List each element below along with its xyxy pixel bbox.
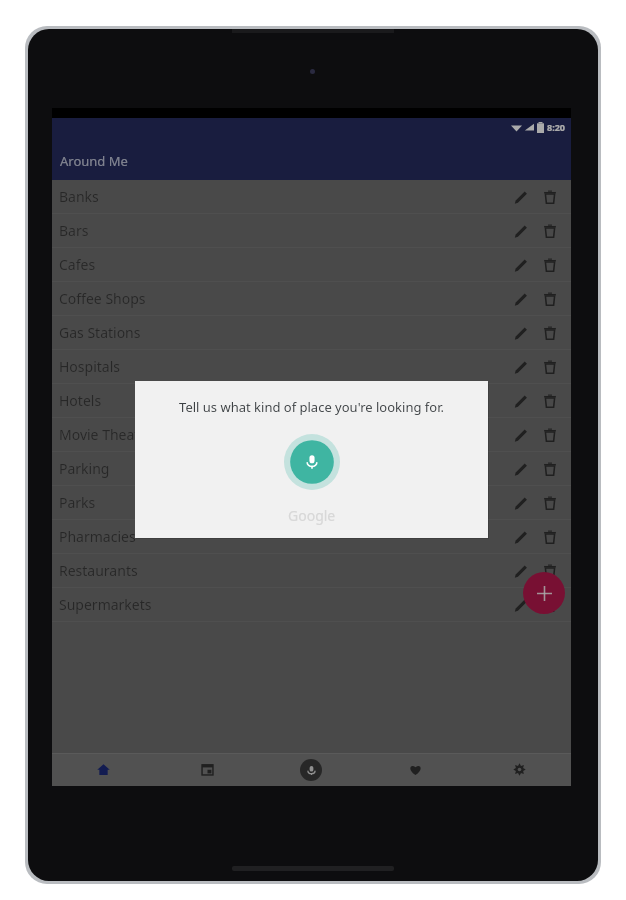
button[interactable]: Parks	[52, 486, 571, 519]
staticText: Gas Stations	[59, 323, 141, 342]
button[interactable]: Movie Theaters	[52, 418, 571, 451]
button[interactable]: Edit Hotels	[507, 388, 533, 414]
button[interactable]: Delete Banks	[537, 184, 563, 210]
staticText: Pharmacies	[59, 527, 136, 546]
button[interactable]: Delete Restaurants	[537, 558, 563, 584]
button[interactable]: Edit Parks	[507, 490, 533, 516]
button[interactable]: Events	[155, 753, 259, 786]
staticText: Hotels	[59, 391, 102, 410]
button[interactable]: Settings	[467, 753, 571, 786]
staticText: Cafes	[59, 255, 96, 274]
staticText: Bars	[59, 221, 89, 240]
button[interactable]: Banks	[52, 180, 571, 213]
button[interactable]: Delete Parking	[537, 456, 563, 482]
staticText: Around Me	[60, 152, 128, 170]
button[interactable]: Add category	[523, 572, 565, 614]
button[interactable]: Delete Cafes	[537, 252, 563, 278]
staticText: Supermarkets	[59, 595, 152, 614]
staticText: Tell us what kind of place you're lookin…	[179, 398, 444, 416]
button[interactable]: Start voice input	[284, 434, 340, 490]
staticText: Restaurants	[59, 561, 138, 580]
button[interactable]: Hotels	[52, 384, 571, 417]
button[interactable]: Restaurants	[52, 554, 571, 587]
button[interactable]: Delete Parks	[537, 490, 563, 516]
button[interactable]: Gas Stations	[52, 316, 571, 349]
staticText: Parking	[59, 459, 110, 478]
button[interactable]: Edit Hospitals	[507, 354, 533, 380]
button[interactable]: Favourites	[363, 753, 467, 786]
button[interactable]: Edit Pharmacies	[507, 524, 533, 550]
button[interactable]: Voice search	[259, 753, 363, 786]
staticText: Coffee Shops	[59, 289, 146, 308]
button[interactable]: Delete Hotels	[537, 388, 563, 414]
button[interactable]: Coffee Shops	[52, 282, 571, 315]
button[interactable]: Edit Bars	[507, 218, 533, 244]
button[interactable]: Cafes	[52, 248, 571, 281]
button[interactable]: Pharmacies	[52, 520, 571, 553]
button[interactable]: Edit Coffee Shops	[507, 286, 533, 312]
button[interactable]: Edit Gas Stations	[507, 320, 533, 346]
button[interactable]: Edit Parking	[507, 456, 533, 482]
staticText: Google	[288, 506, 336, 525]
button[interactable]: Edit Restaurants	[507, 558, 533, 584]
button[interactable]: Delete Movie Theaters	[537, 422, 563, 448]
staticText: 8:20	[547, 121, 565, 133]
button[interactable]: Parking	[52, 452, 571, 485]
staticText: Parks	[59, 493, 96, 512]
staticText: Banks	[59, 187, 99, 206]
button[interactable]: Hospitals	[52, 350, 571, 383]
button[interactable]: Edit Supermarkets	[507, 592, 533, 618]
button[interactable]: Delete Supermarkets	[537, 592, 563, 618]
button[interactable]: Delete Bars	[537, 218, 563, 244]
staticText: Hospitals	[59, 357, 120, 376]
button[interactable]: Delete Coffee Shops	[537, 286, 563, 312]
button[interactable]: Supermarkets	[52, 588, 571, 621]
button[interactable]: Delete Hospitals	[537, 354, 563, 380]
button[interactable]: Edit Movie Theaters	[507, 422, 533, 448]
button[interactable]: Delete Gas Stations	[537, 320, 563, 346]
button[interactable]: Edit Banks	[507, 184, 533, 210]
button[interactable]: Edit Cafes	[507, 252, 533, 278]
button[interactable]: Delete Pharmacies	[537, 524, 563, 550]
button[interactable]: Home	[52, 753, 155, 786]
staticText: Movie Theaters	[59, 425, 160, 444]
button[interactable]: Bars	[52, 214, 571, 247]
